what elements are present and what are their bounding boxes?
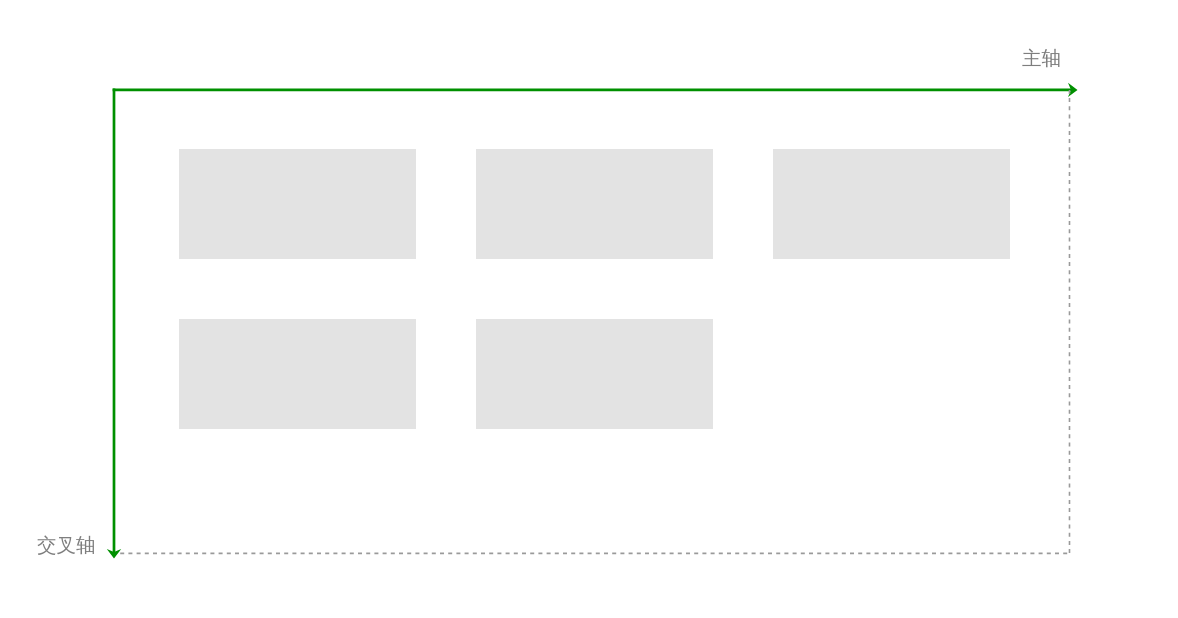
staticText: 交叉轴 (37, 533, 96, 558)
staticText: 主轴 (1022, 46, 1061, 71)
